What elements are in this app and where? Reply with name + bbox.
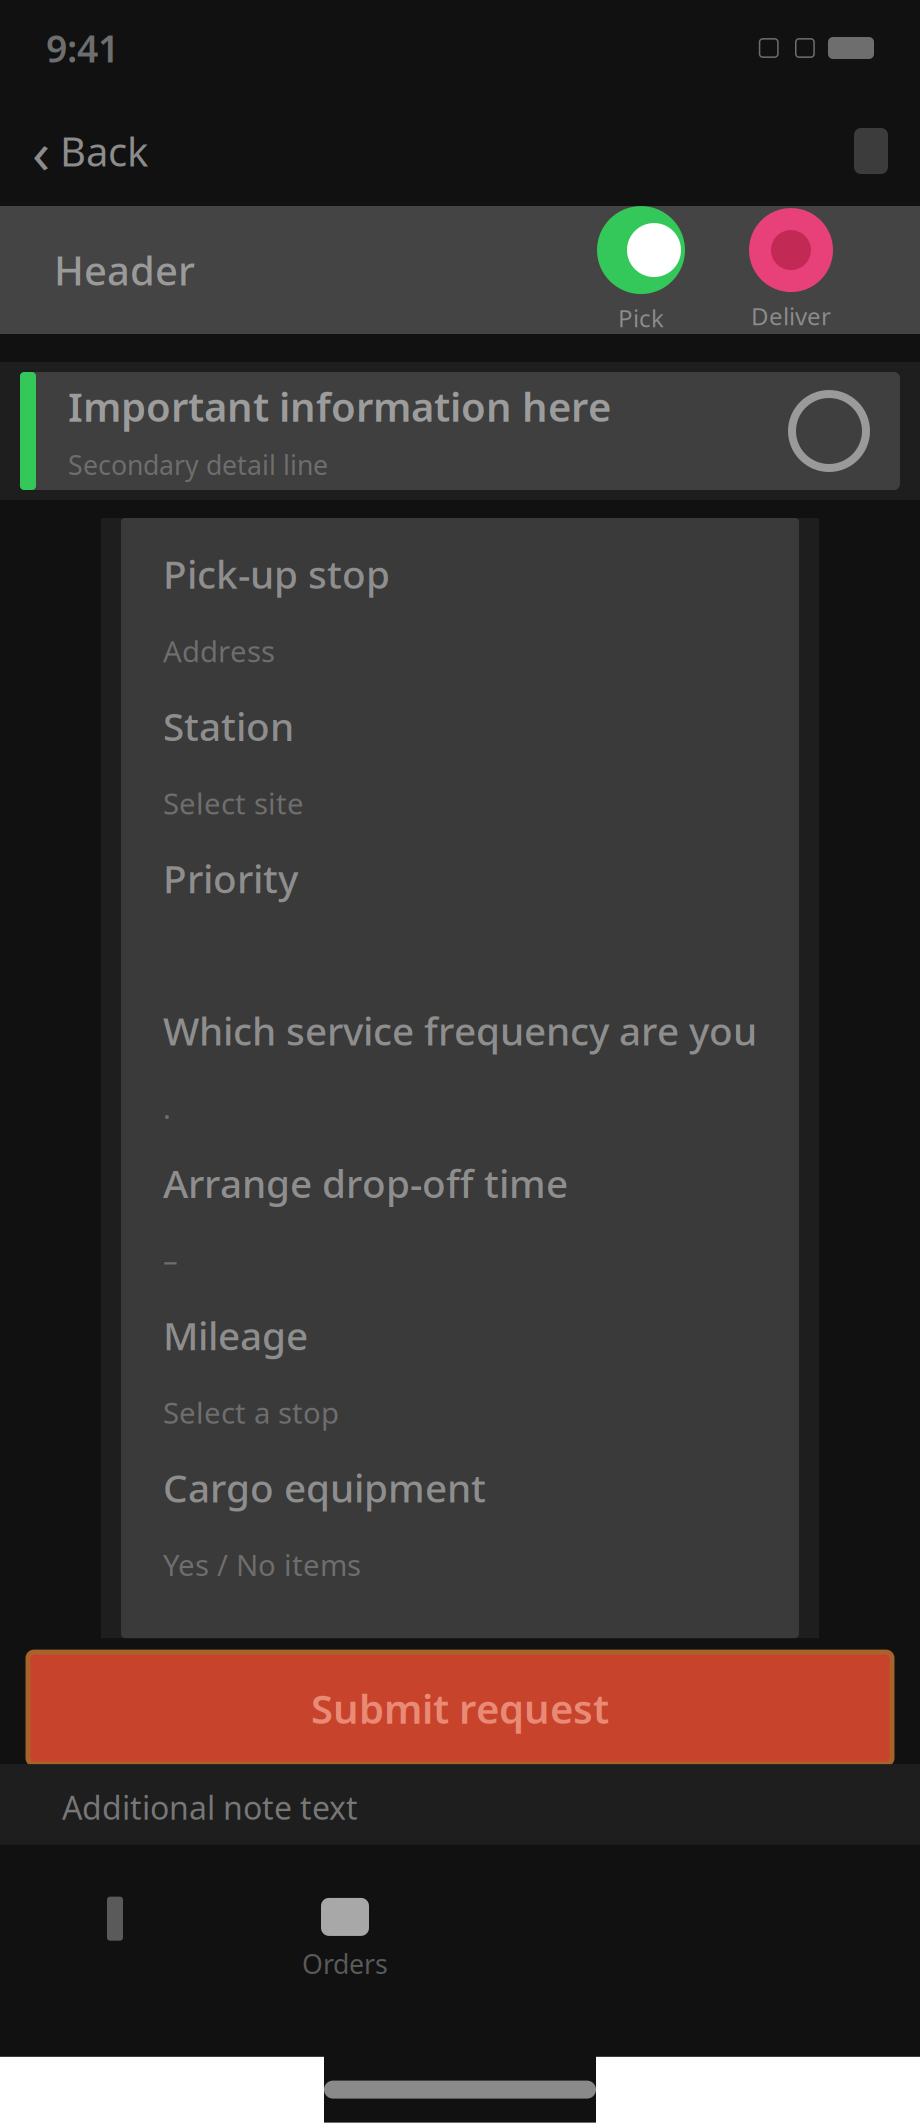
- staticText: 9:41: [46, 23, 119, 73]
- staticText: Select a stop: [163, 1393, 339, 1432]
- staticText: Cargo equipment: [163, 1462, 486, 1513]
- staticText: Header: [54, 243, 195, 296]
- button[interactable]: Home: [0, 1897, 230, 1983]
- button[interactable]: Submit request: [0, 1652, 920, 1764]
- staticText: Secondary detail line: [68, 447, 328, 482]
- staticText: Which service frequency are you: [163, 1005, 757, 1056]
- staticText: Submit request: [311, 1682, 609, 1735]
- staticText: –: [163, 1241, 178, 1280]
- staticText: Important information here: [68, 380, 611, 433]
- staticText: ‹: [32, 112, 50, 190]
- staticText: Pick: [618, 302, 664, 334]
- staticText: Orders: [302, 1946, 388, 1981]
- staticText: Deliver: [751, 300, 831, 332]
- staticText: Back: [60, 124, 148, 177]
- button[interactable]: Deliver: [716, 208, 866, 332]
- staticText: Arrange drop-off time: [163, 1157, 568, 1208]
- button[interactable]: Menu: [842, 118, 900, 184]
- staticText: .: [163, 1088, 171, 1127]
- staticText: Address: [163, 631, 275, 670]
- staticText: Select site: [163, 784, 304, 823]
- staticText: Priority: [163, 853, 298, 904]
- staticText: Yes / No items: [163, 1545, 361, 1584]
- staticText: Pick-up stop: [163, 548, 390, 599]
- button[interactable]: ‹: [20, 102, 160, 200]
- button[interactable]: Important information here: [0, 362, 920, 500]
- button[interactable]: Pick: [566, 206, 716, 334]
- staticText: Station: [163, 700, 294, 752]
- staticText: Mileage: [163, 1309, 308, 1361]
- button[interactable]: Orders: [230, 1898, 460, 1981]
- staticText: Additional note text: [62, 1786, 358, 1829]
